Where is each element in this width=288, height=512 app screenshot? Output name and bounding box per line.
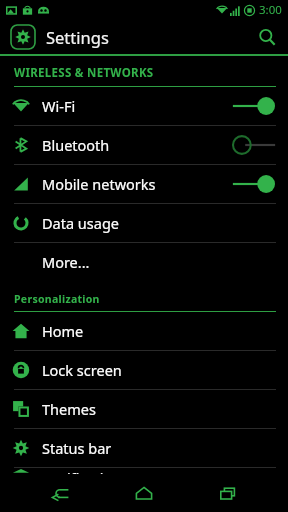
staticText: Wi-Fi — [42, 96, 76, 116]
staticText: Home — [42, 321, 84, 341]
staticText: 3:00 — [259, 2, 282, 18]
staticText: Lock screen — [42, 360, 122, 380]
button[interactable]: Mobile networks — [0, 165, 288, 203]
button[interactable]: Themes — [0, 390, 288, 428]
button[interactable]: Back — [36, 474, 84, 512]
staticText: Status bar — [42, 438, 112, 458]
button[interactable]: Notifications — [0, 468, 288, 474]
button[interactable]: Search — [250, 20, 284, 54]
button[interactable]: Data usage — [0, 204, 288, 242]
button[interactable]: Bluetooth — [0, 126, 288, 164]
staticText: Notifications — [42, 468, 129, 474]
staticText: Settings — [46, 26, 109, 48]
button[interactable]: Wi-Fi — [0, 87, 288, 125]
staticText: Mobile networks — [42, 174, 156, 194]
button[interactable]: Home — [0, 312, 288, 350]
staticText: Bluetooth — [42, 135, 110, 155]
button[interactable]: Lock screen — [0, 351, 288, 389]
staticText: Personalization — [14, 292, 100, 306]
button[interactable]: More... — [0, 243, 288, 281]
staticText: More... — [42, 252, 90, 272]
staticText: WIRELESS & NETWORKS — [14, 65, 154, 81]
staticText: Data usage — [42, 213, 119, 233]
button[interactable]: Status bar — [0, 429, 288, 467]
staticText: Themes — [42, 399, 96, 419]
button[interactable]: Recent apps — [204, 474, 252, 512]
button[interactable]: Home — [120, 474, 168, 512]
